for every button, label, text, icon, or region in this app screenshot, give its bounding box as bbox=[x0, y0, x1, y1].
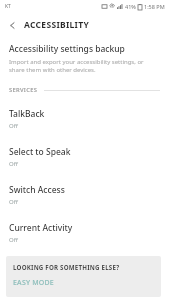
staticText: Accessibility settings backup bbox=[9, 43, 125, 55]
staticText: Switch Access bbox=[9, 184, 65, 196]
staticText: Import and export your accessibility set… bbox=[9, 58, 159, 74]
button[interactable]: EASY MODE bbox=[13, 278, 54, 288]
staticText: 41% bbox=[125, 3, 136, 10]
staticText: SERVICES bbox=[9, 86, 38, 94]
button[interactable]: Select to Speak bbox=[0, 142, 169, 180]
staticText: TalkBack bbox=[9, 108, 45, 120]
staticText: Off bbox=[9, 236, 18, 244]
button[interactable]: Back bbox=[0, 13, 24, 37]
staticText: KT bbox=[5, 3, 11, 10]
button[interactable]: TalkBack bbox=[0, 104, 169, 142]
staticText: Current Activity bbox=[9, 222, 73, 234]
staticText: Off bbox=[9, 160, 18, 168]
staticText: LOOKING FOR SOMETHING ELSE? bbox=[13, 263, 120, 271]
staticText: Select to Speak bbox=[9, 146, 71, 158]
staticText: ACCESSIBILITY bbox=[24, 19, 90, 31]
button[interactable]: Accessibility settings backup bbox=[0, 37, 169, 78]
staticText: 1:58 PM bbox=[144, 3, 165, 10]
button[interactable]: Current Activity bbox=[0, 218, 169, 256]
button[interactable]: Switch Access bbox=[0, 180, 169, 218]
staticText: Off bbox=[9, 198, 18, 206]
staticText: EASY MODE bbox=[13, 278, 54, 288]
staticText: Off bbox=[9, 122, 18, 130]
